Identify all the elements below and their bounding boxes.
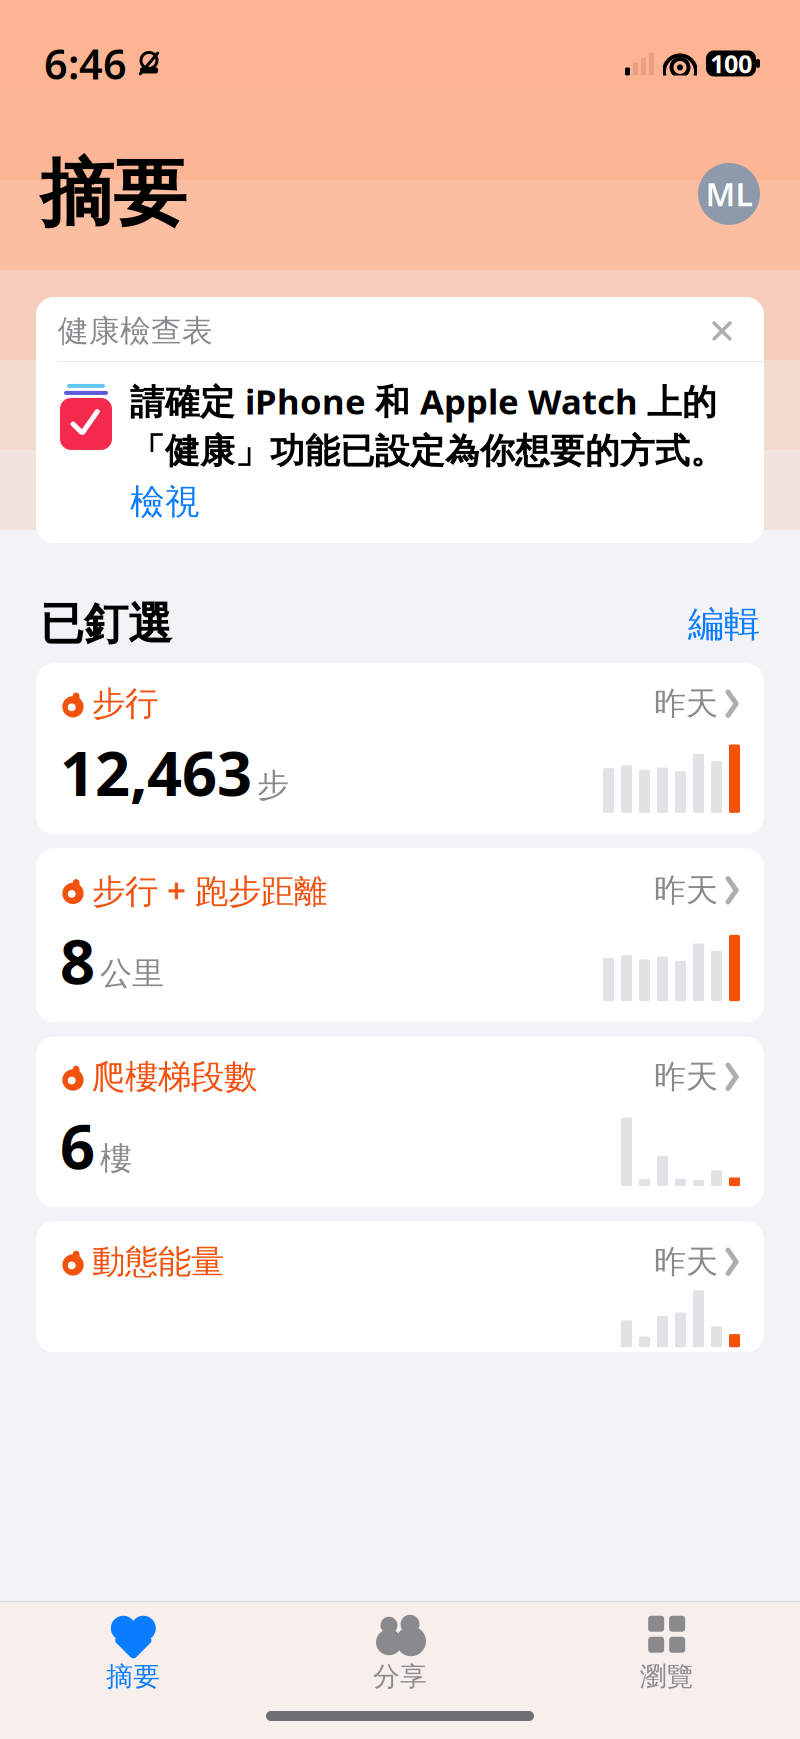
button[interactable]: 步行 + 跑步距離 — [36, 848, 764, 1022]
button[interactable]: 個人檔案 — [698, 163, 760, 225]
staticText: 檢視 — [130, 481, 200, 523]
button[interactable]: 爬樓梯段數 — [36, 1036, 764, 1207]
staticText: ML — [705, 173, 752, 215]
staticText: 步行 + 跑步距離 — [92, 868, 327, 912]
staticText: 100 — [710, 47, 752, 80]
staticText: 昨天 — [654, 1057, 718, 1096]
button[interactable]: 請確定 iPhone 和 Apple Watch 上的 — [36, 362, 764, 543]
staticText: 昨天 — [654, 1242, 718, 1281]
staticText: 「健康」功能已設定為你想要的方式。 — [130, 430, 725, 473]
button[interactable]: 分享 — [267, 1614, 533, 1693]
staticText: 8 — [60, 920, 95, 1001]
staticText: 樓 — [100, 1139, 132, 1178]
staticText: 摘要 — [106, 1660, 160, 1693]
staticText: 動態能量 — [92, 1241, 224, 1282]
button[interactable]: 步行 — [36, 663, 764, 834]
staticText: 爬樓梯段數 — [92, 1056, 257, 1097]
staticText: 12,463 — [60, 731, 252, 813]
staticText: 請確定 iPhone 和 Apple Watch 上的 — [130, 378, 717, 424]
staticText: 昨天 — [654, 871, 718, 910]
button[interactable]: 編輯 — [688, 602, 760, 646]
staticText: 步行 — [92, 683, 158, 724]
staticText: 編輯 — [688, 602, 760, 646]
button[interactable]: 關閉 — [702, 311, 742, 351]
button[interactable]: 動態能量 — [36, 1221, 764, 1352]
staticText: 公里 — [100, 954, 164, 993]
staticText: 昨天 — [654, 684, 718, 723]
staticText: 6 — [60, 1105, 95, 1186]
staticText: 健康檢查表 — [58, 312, 213, 350]
staticText: 分享 — [373, 1660, 427, 1693]
button[interactable]: 摘要 — [0, 1614, 267, 1693]
button[interactable]: 瀏覽 — [533, 1614, 800, 1693]
staticText: 6:46 — [44, 36, 127, 91]
staticText: 摘要 — [40, 149, 186, 239]
staticText: 瀏覽 — [640, 1660, 694, 1693]
staticText: 已釘選 — [40, 597, 172, 651]
staticText: 步 — [257, 766, 289, 805]
